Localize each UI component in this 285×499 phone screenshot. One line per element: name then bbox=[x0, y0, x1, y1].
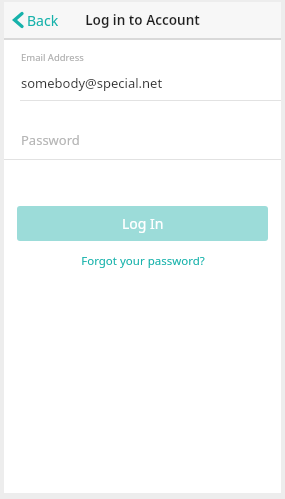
staticText: Forgot your password? bbox=[81, 253, 205, 269]
button[interactable]: Log In bbox=[17, 206, 268, 241]
staticText: Back bbox=[27, 11, 59, 30]
staticText: Log In bbox=[122, 214, 164, 233]
staticText: somebody@special.net bbox=[21, 74, 163, 92]
button[interactable]: Password bbox=[4, 131, 281, 149]
staticText: Email Address bbox=[21, 51, 84, 64]
button[interactable]: Forgot your password? bbox=[75, 250, 211, 272]
button[interactable]: Back bbox=[4, 2, 67, 38]
staticText: Password bbox=[21, 131, 80, 149]
button[interactable]: somebody@special.net bbox=[4, 74, 281, 92]
staticText: Log in to Account bbox=[85, 11, 200, 29]
